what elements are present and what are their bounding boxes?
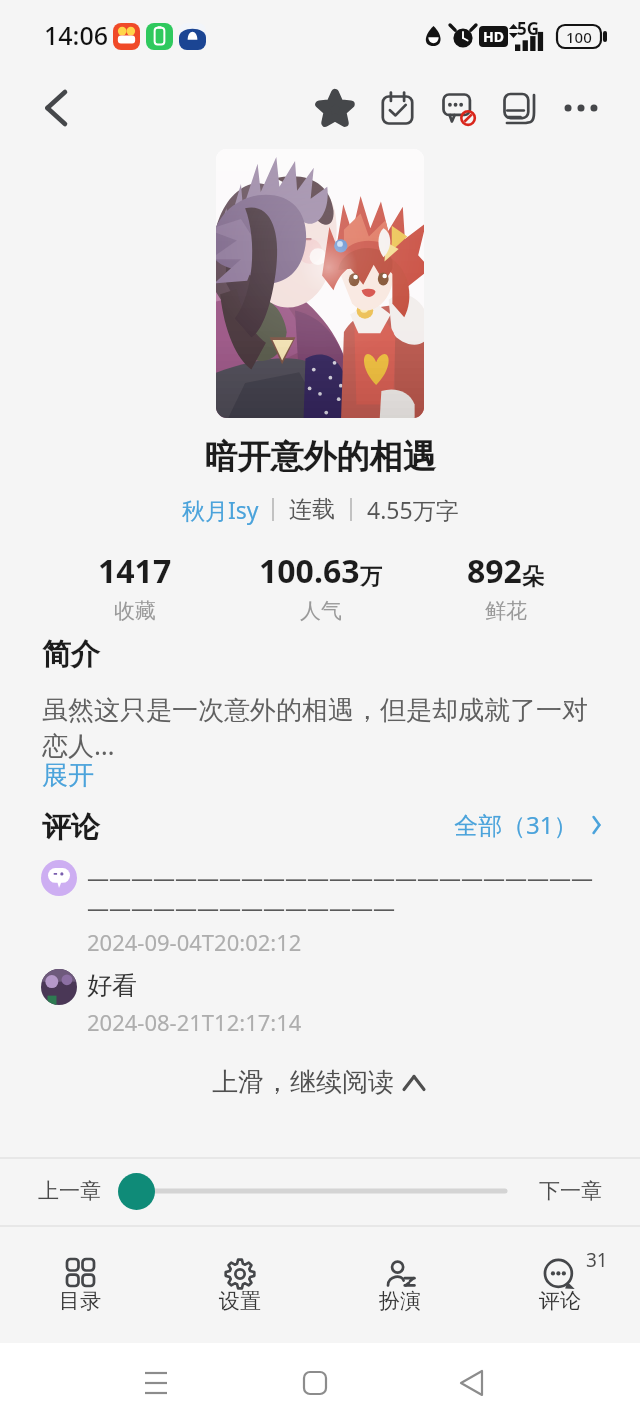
staticText: 虽然这只是一次意外的相遇，但是却成就了一对恋人… [42,694,608,763]
staticText: 朵 [522,563,544,591]
staticText: 上滑，继续阅读 [212,1066,394,1099]
button[interactable]: Home [291,1359,339,1407]
button[interactable]: 下一章 [539,1178,602,1204]
staticText: 简介 [42,636,100,673]
staticText: 鲜花 [485,598,527,624]
button[interactable]: 100.63 [228,549,413,624]
staticText: ————————————————————————————————————— [87,862,606,923]
button[interactable]: 好看 [41,969,606,1036]
button[interactable]: Comment settings [431,81,485,135]
button[interactable]: Back [28,83,78,133]
staticText: 人气 [300,598,342,624]
staticText: 扮演 [379,1288,421,1314]
staticText: 100.63 [259,549,360,593]
button[interactable]: 秋月Isy [182,494,259,525]
staticText: 万 [360,563,382,591]
staticText: 全部（31） [454,808,578,841]
button[interactable]: Chapter progress [118,1173,155,1210]
button[interactable]: 设置 [180,1225,300,1343]
staticText: 2024-09-04T20:02:12 [87,927,302,957]
staticText: 892 [467,549,522,593]
staticText: 14:06 [44,18,109,52]
staticText: 31 [586,1247,608,1273]
staticText: 2024-08-21T12:17:14 [87,1007,302,1037]
button[interactable]: Recent apps [132,1359,180,1407]
button[interactable]: 1417 [42,549,228,624]
staticText: HD [483,27,504,46]
button[interactable]: Bookshelf [492,81,546,135]
staticText: 1417 [98,549,172,593]
button[interactable]: 全部（31） [454,808,606,841]
staticText: 好看 [87,970,137,1001]
button[interactable]: 扮演 [340,1225,460,1343]
staticText: 100 [566,27,592,47]
staticText: 连载 [289,495,335,524]
staticText: 4.55万字 [367,494,459,525]
button[interactable]: Back [448,1359,496,1407]
button[interactable]: 上一章 [38,1178,101,1204]
staticText: 评论 [539,1288,581,1314]
staticText: 5G [517,17,540,40]
staticText: 暗开意外的相遇 [0,436,640,478]
button[interactable]: 展开 [42,759,94,792]
button[interactable]: Reading plan [370,81,424,135]
staticText: 设置 [219,1288,261,1314]
button[interactable]: 892 [413,549,598,624]
button[interactable]: 31 [500,1225,620,1343]
button[interactable]: ————————————————————————————————————— [41,860,606,957]
button[interactable]: Favorite [308,81,362,135]
staticText: 评论 [42,809,100,846]
button[interactable]: More options [554,81,608,135]
button[interactable]: 目录 [20,1225,140,1343]
staticText: 目录 [59,1288,101,1314]
button[interactable]: 上滑，继续阅读 [0,1066,640,1099]
staticText: 收藏 [114,598,156,624]
